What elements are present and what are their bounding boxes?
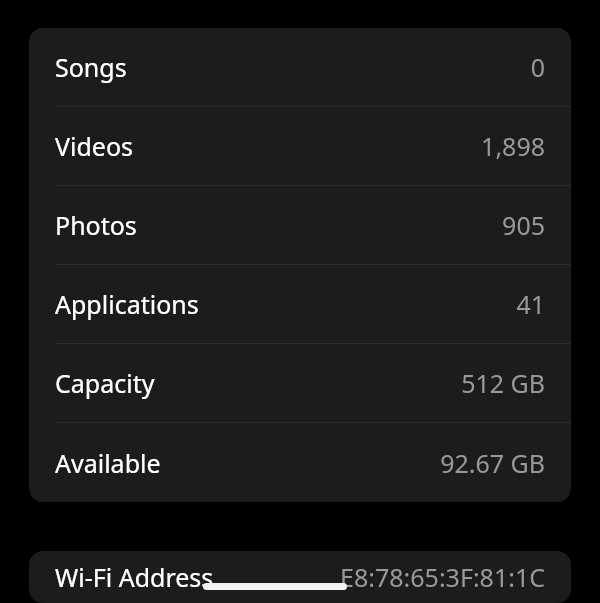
- button[interactable]: Available: [29, 423, 571, 502]
- button[interactable]: Capacity: [29, 344, 571, 422]
- staticText: 41: [516, 287, 545, 321]
- button[interactable]: Wi-Fi Address: [29, 551, 571, 603]
- staticText: Capacity: [55, 366, 155, 400]
- staticText: 0: [530, 50, 545, 84]
- staticText: Wi-Fi Address: [55, 560, 214, 594]
- staticText: Applications: [55, 287, 199, 321]
- staticText: 905: [502, 208, 545, 242]
- button[interactable]: Photos: [29, 186, 571, 264]
- staticText: Songs: [55, 50, 127, 84]
- staticText: 1,898: [481, 129, 545, 163]
- button[interactable]: Songs: [29, 28, 571, 106]
- staticText: Available: [55, 446, 161, 480]
- button[interactable]: Videos: [29, 107, 571, 185]
- button[interactable]: Applications: [29, 265, 571, 343]
- staticText: 512 GB: [461, 366, 545, 400]
- staticText: 92.67 GB: [440, 446, 545, 480]
- staticText: E8:78:65:3F:81:1C: [340, 560, 545, 594]
- staticText: Photos: [55, 208, 137, 242]
- staticText: Videos: [55, 129, 134, 163]
